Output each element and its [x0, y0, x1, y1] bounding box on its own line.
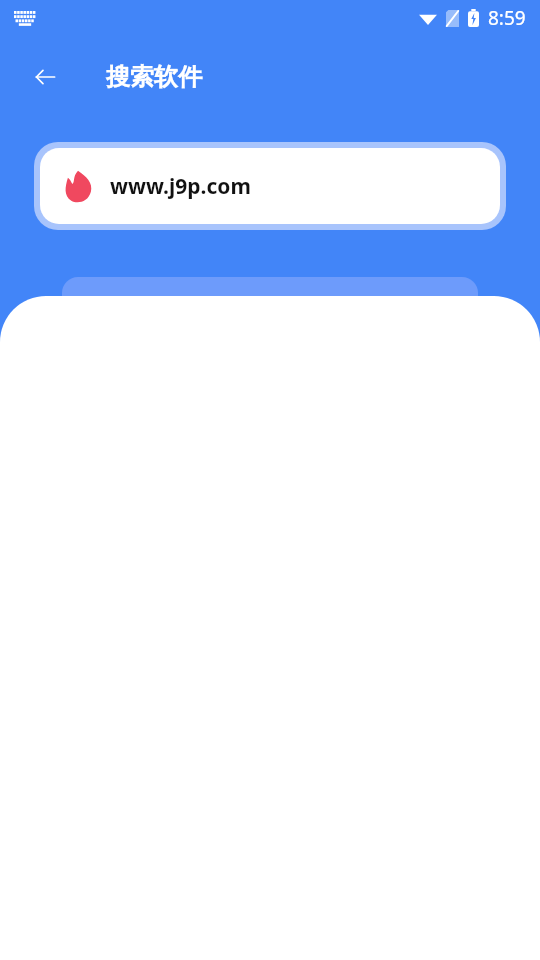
button[interactable]: Back — [22, 54, 68, 100]
staticText: 8:59 — [488, 5, 526, 31]
staticText: 搜索软件 — [106, 62, 202, 92]
staticText: www.j9p.com — [110, 172, 251, 201]
button[interactable]: www.j9p.com — [34, 142, 506, 230]
